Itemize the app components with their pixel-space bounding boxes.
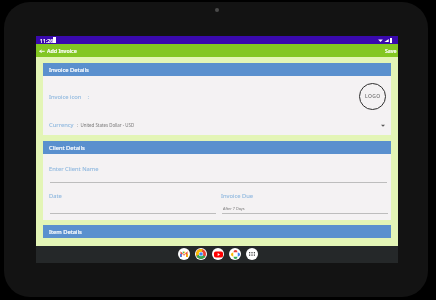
button[interactable]: Gmail [178, 248, 190, 260]
button[interactable]: Back [36, 47, 79, 54]
other: Back [39, 48, 45, 54]
staticText: Date [49, 192, 62, 200]
staticText: LOGO [365, 93, 381, 100]
staticText: 11:26 [40, 37, 54, 44]
button[interactable]: Client Details [43, 141, 391, 154]
staticText: Client Details [49, 144, 85, 152]
button[interactable]: LOGO [359, 83, 386, 110]
button[interactable]: Currency [43, 121, 391, 129]
staticText: Invoice Details [49, 66, 89, 74]
button[interactable]: Chrome [195, 248, 207, 260]
staticText: Add Invoice [47, 47, 77, 54]
button[interactable]: Save [382, 45, 398, 56]
button[interactable]: All apps [246, 248, 258, 260]
button[interactable]: Photos [229, 248, 241, 260]
staticText: Invoice icon : [49, 93, 90, 101]
staticText: Save [385, 47, 397, 54]
button[interactable]: YouTube [212, 248, 224, 260]
staticText: Currency [49, 121, 74, 129]
staticText: Item Details [49, 228, 82, 236]
staticText: Enter Client Name [49, 165, 99, 173]
staticText: : United States Dollar - USD [77, 122, 135, 128]
button[interactable]: Item Details [43, 225, 391, 238]
staticText: Invoice Due [221, 192, 254, 200]
button[interactable]: Invoice Details [43, 63, 391, 76]
staticText: After 7 Days [223, 206, 245, 211]
